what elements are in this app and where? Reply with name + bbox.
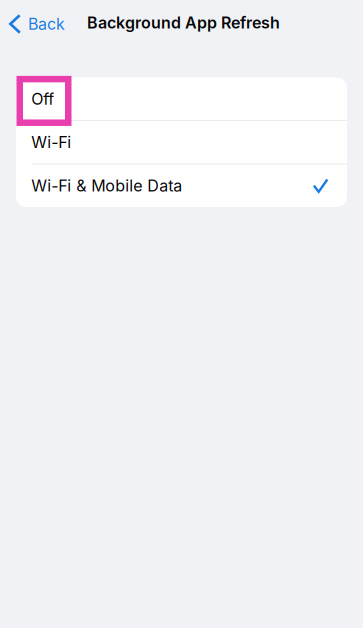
button[interactable]: Wi-Fi & Mobile Data [16,164,347,207]
staticText: Back [28,14,65,34]
button[interactable]: Off [16,77,347,120]
button[interactable]: Wi-Fi [16,121,347,164]
staticText: Off [31,89,54,109]
button[interactable]: Back [0,7,75,41]
staticText: Wi-Fi [31,133,71,152]
staticText: Wi-Fi & Mobile Data [31,176,182,195]
staticText: Background App Refresh [87,13,280,32]
